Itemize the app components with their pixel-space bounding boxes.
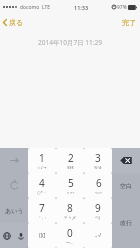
staticText: 「」: — [37, 215, 47, 220]
staticText: 〜… — [66, 240, 74, 245]
staticText: 3 — [95, 151, 101, 165]
button[interactable] — [0, 148, 28, 173]
button[interactable]: 2 — [56, 148, 84, 173]
button[interactable]: Change keyboard — [0, 223, 14, 248]
button[interactable]: 4 — [28, 173, 56, 198]
staticText: ☆♪→ — [37, 165, 47, 170]
button[interactable]: Delete — [112, 148, 140, 173]
staticText: 97% — [117, 4, 127, 11]
staticText: <=> — [95, 190, 102, 195]
staticText: ^\| — [95, 215, 101, 220]
staticText: ¥$€ — [67, 165, 74, 170]
staticText: 2 — [68, 151, 74, 165]
staticText: 1 — [39, 151, 45, 165]
button[interactable]: .,-/ — [84, 223, 112, 248]
button[interactable]: 空白 — [112, 173, 140, 198]
button[interactable]: 完了 — [118, 16, 140, 29]
staticText: 〒々〆 — [64, 215, 76, 220]
staticText: 戻る — [9, 18, 24, 27]
staticText: 5 — [68, 176, 74, 190]
staticText: 0 — [67, 226, 73, 240]
staticText: 7 — [39, 201, 45, 215]
staticText: 完了 — [122, 18, 136, 27]
staticText: 改行 — [120, 219, 132, 227]
staticText: 6 — [96, 176, 102, 190]
button[interactable]: (](] — [28, 223, 56, 248]
staticText: %°# — [94, 165, 102, 170]
button[interactable]: 6 — [84, 173, 112, 198]
staticText: 8 — [67, 201, 73, 215]
staticText: 空白 — [120, 182, 132, 190]
staticText: あいう — [5, 207, 24, 215]
button[interactable]: 戻る — [0, 16, 28, 29]
staticText: docomo — [20, 4, 40, 11]
button[interactable]: Voice input — [14, 223, 28, 248]
button[interactable] — [0, 173, 28, 198]
staticText: .,-/ — [95, 232, 102, 239]
button[interactable]: 8 — [56, 198, 84, 223]
button[interactable]: 1 — [28, 148, 56, 173]
staticText: ○*・ — [37, 190, 47, 195]
staticText: 9 — [95, 201, 101, 215]
button[interactable]: 7 — [28, 198, 56, 223]
button[interactable]: 3 — [84, 148, 112, 173]
button[interactable]: あいう — [0, 198, 28, 223]
staticText: 4 — [39, 176, 45, 190]
staticText: ＋×÷ — [66, 190, 75, 195]
staticText: 11:33 — [74, 4, 89, 11]
staticText: LTE — [42, 4, 51, 11]
button[interactable]: 5 — [56, 173, 84, 198]
button[interactable]: 9 — [84, 198, 112, 223]
button[interactable]: 0 — [56, 223, 84, 248]
button[interactable]: 改行 — [112, 198, 140, 248]
staticText: (](] — [39, 232, 46, 239]
staticText: 2014年10月7日 11:29 — [0, 38, 140, 47]
